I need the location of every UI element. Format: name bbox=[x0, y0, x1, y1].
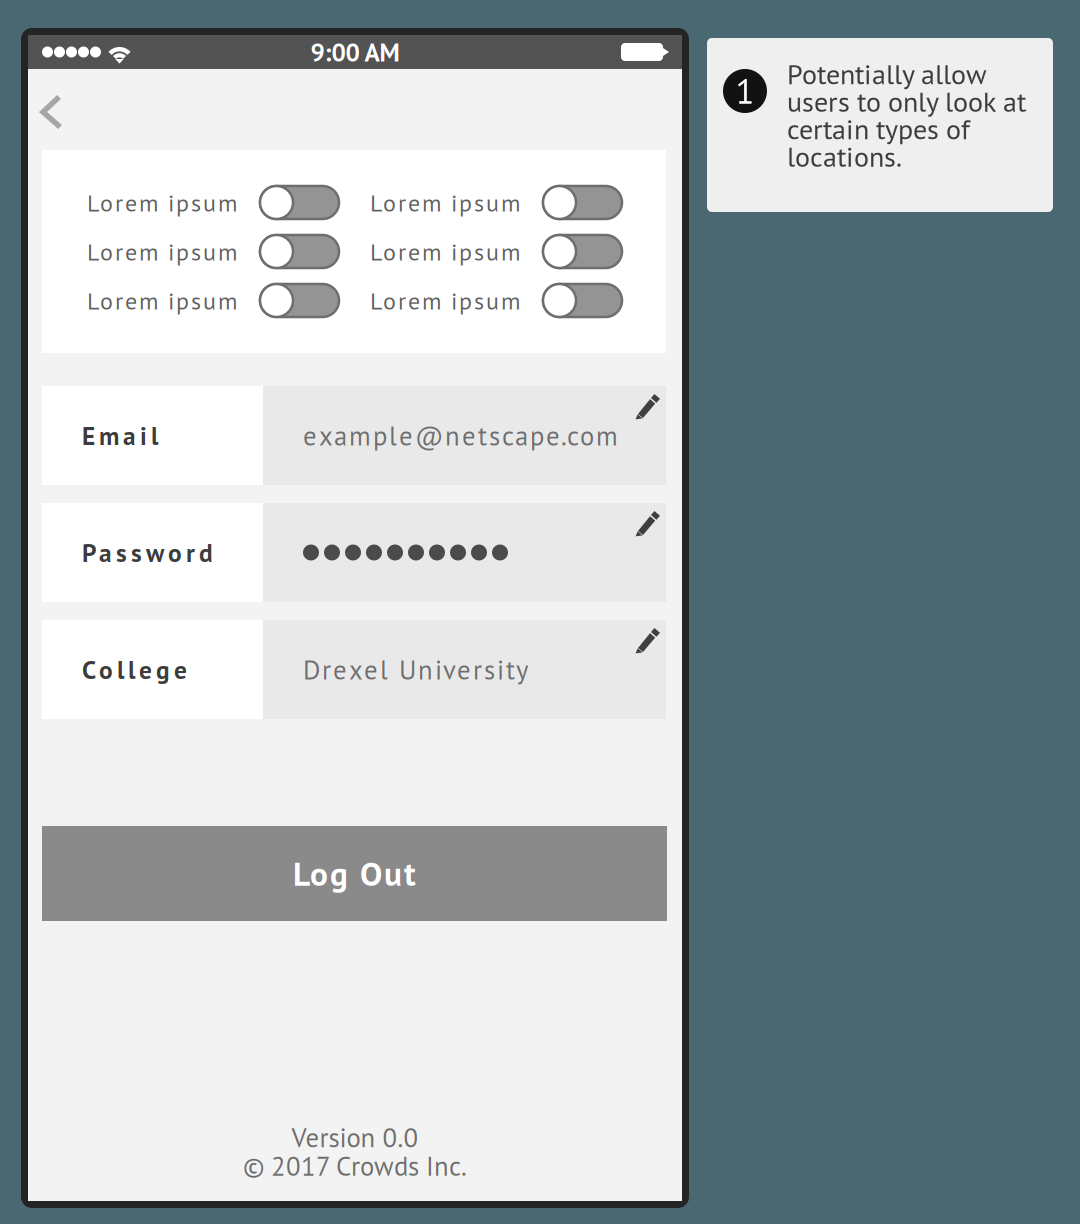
staticText: L o r e m i p s u m bbox=[87, 187, 237, 218]
staticText: L o r e m i p s u m bbox=[370, 236, 520, 267]
button[interactable]: Back bbox=[28, 78, 82, 146]
staticText: L o g O u t bbox=[293, 852, 416, 895]
staticText: P a s s w o r d bbox=[82, 536, 213, 569]
button[interactable]: C o l l e g e bbox=[42, 620, 666, 719]
staticText: 9:00 AM bbox=[310, 36, 399, 68]
staticText: L o r e m i p s u m bbox=[87, 285, 237, 316]
button[interactable]: E m a i l bbox=[42, 386, 666, 485]
staticText: C o l l e g e bbox=[82, 653, 187, 686]
staticText: L o r e m i p s u m bbox=[87, 236, 237, 267]
button[interactable]: L o g O u t bbox=[42, 826, 667, 921]
staticText: users to only look at bbox=[787, 83, 1026, 119]
staticText: certain types of bbox=[787, 111, 970, 147]
button[interactable]: P a s s w o r d bbox=[42, 503, 666, 602]
staticText: D r e x e l U n i v e r s i t y bbox=[303, 652, 528, 687]
staticText: © 2017 Crowds Inc. bbox=[243, 1148, 467, 1183]
staticText: locations. bbox=[787, 138, 902, 174]
staticText: L o r e m i p s u m bbox=[370, 285, 520, 316]
staticText: 1 bbox=[735, 69, 754, 113]
staticText: E m a i l bbox=[82, 419, 158, 452]
staticText: Version 0.0 bbox=[291, 1120, 418, 1154]
staticText: L o r e m i p s u m bbox=[370, 187, 520, 218]
staticText: Potentially allow bbox=[787, 56, 987, 92]
staticText: e x a m p l e @ n e t s c a p e . c o m bbox=[303, 418, 618, 453]
